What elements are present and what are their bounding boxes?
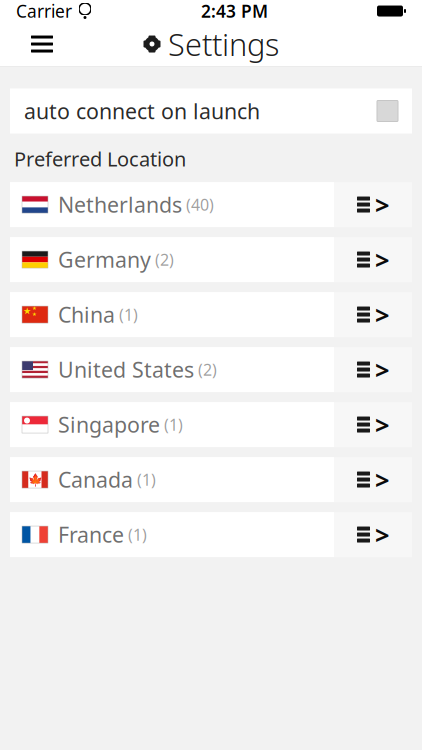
staticText: ★ (32, 311, 37, 317)
staticText: > (375, 243, 389, 276)
staticText: > (375, 518, 389, 551)
staticText: > (375, 408, 389, 441)
staticText: (2) (155, 249, 174, 270)
button[interactable]: Germany (0, 237, 422, 282)
button[interactable]: auto connect on launch (0, 88, 422, 133)
button[interactable]: ★ (0, 292, 422, 337)
staticText: 2:43 PM (201, 0, 268, 22)
staticText: Canada (58, 465, 133, 494)
button[interactable]: 🍁 (0, 457, 422, 502)
staticText: (2) (198, 359, 217, 380)
staticText: (1) (119, 304, 138, 325)
staticText: China (58, 300, 115, 329)
staticText: (1) (164, 414, 183, 435)
staticText: Germany (58, 245, 151, 274)
button[interactable]: Singapore (0, 402, 422, 447)
staticText: auto connect on launch (24, 97, 260, 125)
staticText: > (375, 463, 389, 496)
staticText: United States (58, 355, 194, 384)
staticText: > (375, 298, 389, 331)
staticText: ★ (32, 305, 37, 311)
staticText: ★ (23, 306, 31, 316)
staticText: Netherlands (58, 190, 182, 219)
button[interactable]: United States (0, 347, 422, 392)
staticText: (1) (128, 524, 147, 545)
button[interactable]: Netherlands (0, 182, 422, 227)
staticText: > (375, 353, 389, 386)
staticText: Preferred Location (14, 145, 186, 172)
staticText: (40) (186, 194, 214, 215)
staticText: 🍁 (27, 473, 42, 486)
button[interactable]: Menu (20, 22, 64, 66)
staticText: > (375, 188, 389, 221)
staticText: Settings (168, 24, 279, 64)
button[interactable]: France (0, 512, 422, 557)
staticText: Singapore (58, 410, 160, 439)
staticText: (1) (137, 469, 156, 490)
staticText: Carrier (16, 0, 72, 22)
staticText: France (58, 520, 124, 549)
